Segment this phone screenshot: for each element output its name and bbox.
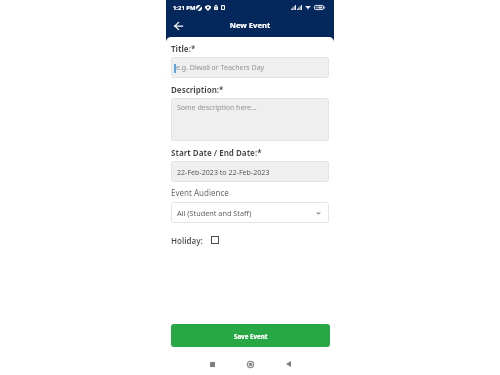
staticText: New Event (166, 20, 334, 30)
button[interactable]: 22-Feb-2023 to 22-Feb-2023 (171, 161, 329, 182)
button[interactable]: All (Student and Staff) (171, 202, 329, 223)
staticText: 1:21 PM (173, 4, 196, 12)
staticText: Description:* (171, 84, 224, 95)
button[interactable]: Some description here... (171, 98, 329, 141)
staticText: 22-Feb-2023 to 22-Feb-2023 (177, 167, 270, 177)
button[interactable]: Recent apps (202, 354, 222, 374)
staticText: Event Audience (171, 187, 229, 198)
button[interactable]: Back (167, 15, 189, 37)
staticText: Some description here... (177, 103, 257, 113)
button[interactable]: Save Event (171, 324, 330, 347)
button[interactable]: Home (240, 354, 260, 374)
staticText: e.g. Diwali or Teachers Day (176, 63, 265, 73)
staticText: Save Event (234, 332, 268, 340)
button[interactable]: e.g. Diwali or Teachers Day (171, 57, 329, 78)
staticText: All (Student and Staff) (177, 208, 316, 218)
button[interactable]: Back (278, 354, 298, 374)
button[interactable]: Holiday checkbox (211, 236, 219, 244)
staticText: Holiday: (171, 235, 203, 246)
staticText: Start Date / End Date:* (171, 147, 262, 158)
staticText: Title:* (171, 43, 196, 54)
